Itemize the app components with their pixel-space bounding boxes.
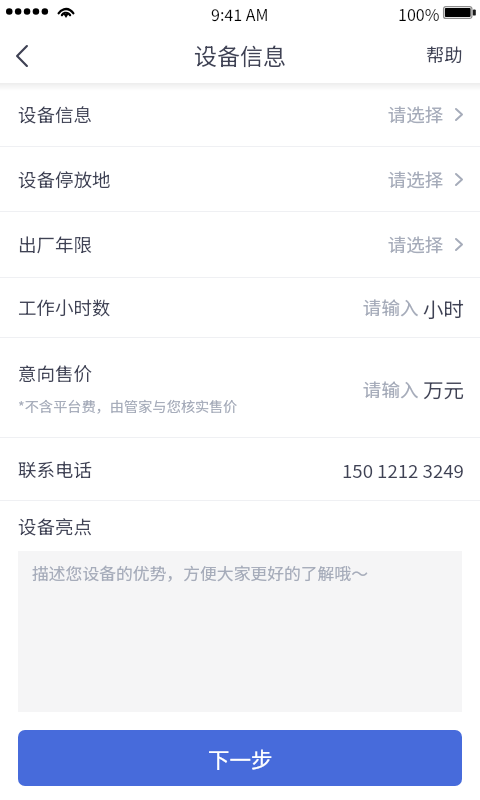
button[interactable]: 意向售价 [0,338,480,437]
staticText: 请选择 [388,101,444,128]
staticText: 设备信息 [18,101,93,128]
staticText: 下一步 [208,743,273,774]
staticText: 请选择 [388,231,444,258]
button[interactable]: 设备信息 [0,83,480,146]
staticText: 设备亮点 [18,513,93,540]
button[interactable]: 下一步 [18,730,462,786]
button[interactable]: 帮助 [409,27,480,81]
staticText: 描述您设备的优势，方便大家更好的了解哦～ [32,561,368,585]
button[interactable]: 工作小时数 [0,278,480,337]
button[interactable]: 描述您设备的优势，方便大家更好的了解哦～ [18,551,462,712]
staticText: 工作小时数 [18,294,111,321]
staticText: 设备停放地 [18,166,111,193]
staticText: 小时 [423,293,464,323]
staticText: 出厂年限 [18,231,93,258]
staticText: *不含平台费，由管家与您核实售价 [18,396,238,417]
button[interactable]: Back [0,29,48,83]
staticText: 150 1212 3249 [342,456,464,483]
button[interactable]: 出厂年限 [0,212,480,277]
staticText: 设备信息 [194,38,286,71]
staticText: 请选择 [388,166,444,193]
staticText: 请输入 [363,294,419,321]
staticText: 100% [398,2,440,25]
staticText: 联系电话 [18,456,93,483]
staticText: 9:41 AM [211,2,269,25]
staticText: 意向售价 [18,360,93,387]
staticText: 万元 [423,374,464,404]
staticText: 请输入 [363,376,419,403]
staticText: 帮助 [426,41,464,68]
button[interactable]: 设备停放地 [0,147,480,211]
button[interactable]: 联系电话 [0,438,480,500]
